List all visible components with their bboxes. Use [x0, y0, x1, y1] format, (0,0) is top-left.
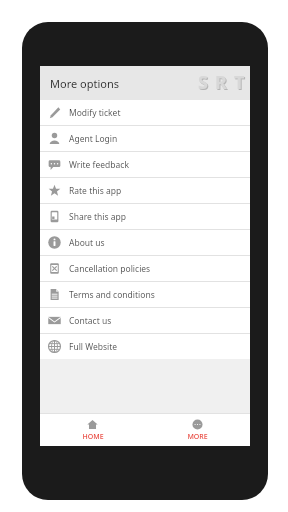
staticText: Contact us [69, 315, 112, 327]
staticText: Modify ticket [69, 107, 121, 119]
staticText: Share this app [69, 211, 127, 223]
staticText: S [198, 70, 208, 95]
staticText: About us [69, 237, 105, 249]
staticText: MORE [187, 432, 208, 442]
button[interactable]: Rate this app [40, 178, 250, 203]
staticText: Agent Login [69, 133, 118, 145]
button[interactable]: Write feedback [40, 152, 250, 177]
staticText: Cancellation policies [69, 263, 151, 275]
staticText: R [215, 70, 227, 95]
button[interactable]: Modify ticket [40, 100, 250, 125]
staticText: HOME [82, 432, 104, 442]
staticText: Write feedback [69, 159, 129, 171]
button[interactable]: About us [40, 230, 250, 255]
staticText: R [216, 71, 228, 96]
button[interactable]: Share this app [40, 204, 250, 229]
staticText: Rate this app [69, 185, 122, 197]
staticText: More options [50, 76, 119, 91]
button[interactable]: Cancellation policies [40, 256, 250, 281]
staticText: T [234, 70, 245, 95]
button[interactable]: Agent Login [40, 126, 250, 151]
button[interactable]: Full Website [40, 334, 250, 359]
button[interactable]: MORE [145, 414, 250, 446]
staticText: Terms and conditions [69, 289, 155, 301]
button[interactable]: HOME [40, 414, 145, 446]
staticText: S [199, 71, 209, 96]
button[interactable]: Contact us [40, 308, 250, 333]
button[interactable]: Terms and conditions [40, 282, 250, 307]
staticText: Full Website [69, 341, 118, 353]
staticText: T [235, 71, 246, 96]
